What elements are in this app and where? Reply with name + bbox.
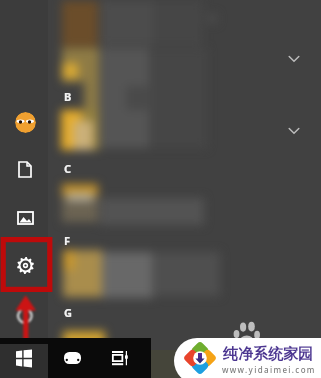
staticText: www.yidaimei.com — [222, 364, 316, 375]
staticText: B — [64, 89, 72, 104]
button[interactable]: Documents — [18, 161, 32, 178]
staticText: C — [64, 161, 72, 176]
button[interactable]: Cortana — [55, 344, 90, 378]
staticText: 纯净系统家园 — [223, 345, 313, 364]
button[interactable]: Task view — [100, 344, 135, 378]
button[interactable]: Power — [13, 294, 38, 346]
button[interactable]: Pictures — [17, 211, 34, 225]
button[interactable]: Expand — [284, 49, 304, 69]
button[interactable]: Start — [0, 344, 48, 378]
button[interactable]: Account — [15, 112, 36, 133]
button[interactable]: Expand — [284, 121, 304, 141]
staticText: F — [64, 233, 71, 248]
staticText: G — [64, 305, 72, 320]
button[interactable]: Settings — [0, 237, 52, 292]
